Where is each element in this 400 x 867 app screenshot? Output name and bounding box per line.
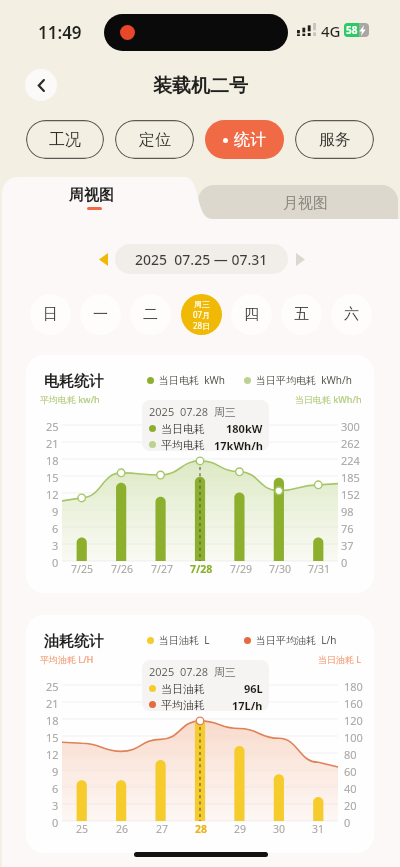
button[interactable]: Back <box>25 69 57 101</box>
button[interactable]: Next week <box>289 248 311 270</box>
staticText: 224 <box>341 453 360 468</box>
staticText: 7/30 <box>269 562 291 576</box>
staticText: 15 <box>46 730 59 745</box>
staticText: 17kWh/h <box>214 438 263 451</box>
staticText: 6 <box>52 781 59 796</box>
staticText: 服务 <box>319 130 351 150</box>
button[interactable]: 四 <box>231 294 272 335</box>
staticText: 工况 <box>49 130 81 150</box>
staticText: 25 <box>46 679 59 694</box>
staticText: 60 <box>344 764 357 779</box>
staticText: 7/25 <box>71 562 93 576</box>
staticText: 当日电耗 <box>161 422 205 436</box>
staticText: 40 <box>344 781 357 796</box>
staticText: 统计 <box>234 130 266 150</box>
staticText: 30 <box>273 822 286 836</box>
staticText: 0 <box>52 815 59 830</box>
staticText: 25 <box>76 822 89 836</box>
staticText: 装载机二号 <box>153 74 248 98</box>
staticText: 9 <box>52 504 59 519</box>
staticText: 160 <box>344 696 363 711</box>
staticText: 37 <box>341 538 354 553</box>
staticText: 180 <box>344 679 363 694</box>
staticText: 7/27 <box>151 562 173 576</box>
staticText: 98 <box>341 504 354 519</box>
staticText: 18 <box>46 713 59 728</box>
staticText: 15 <box>46 470 59 485</box>
staticText: 2025 07.28 周三 <box>149 664 236 679</box>
staticText: 7/29 <box>230 562 252 576</box>
staticText: 2025 07.28 周三 <box>149 404 236 419</box>
staticText: 四 <box>244 305 259 324</box>
staticText: 300 <box>341 419 360 434</box>
staticText: 二 <box>143 305 158 324</box>
staticText: 21 <box>46 696 59 711</box>
staticText: 平均电耗 <box>161 438 205 451</box>
staticText: 26 <box>116 822 129 836</box>
button[interactable]: Previous week <box>92 248 114 270</box>
staticText: 一 <box>93 305 108 324</box>
staticText: 7/31 <box>308 562 330 576</box>
staticText: 31 <box>312 822 325 836</box>
staticText: 80 <box>344 747 357 762</box>
button[interactable]: 一 <box>80 294 121 335</box>
button[interactable]: 周视图 <box>2 177 207 219</box>
staticText: 当日平均电耗 kWh/h <box>256 373 352 387</box>
staticText: 11:49 <box>38 21 82 44</box>
staticText: 周三 <box>194 299 210 309</box>
button[interactable]: 2025 07.25 — 07.31 <box>115 244 288 274</box>
button[interactable]: 六 <box>331 294 372 335</box>
staticText: 4G <box>321 21 341 41</box>
staticText: 2025 07.25 — 07.31 <box>135 250 268 269</box>
staticText: 当日平均油耗 L/h <box>256 633 337 647</box>
staticText: 月视图 <box>283 194 328 213</box>
staticText: 五 <box>294 305 309 324</box>
button[interactable]: 服务 <box>295 120 374 159</box>
staticText: 262 <box>341 436 360 451</box>
staticText: 当日电耗 kWh/h <box>295 393 362 405</box>
staticText: 当日油耗 L <box>318 653 362 665</box>
staticText: 100 <box>344 730 363 745</box>
staticText: 六 <box>344 305 359 324</box>
staticText: 120 <box>344 713 363 728</box>
staticText: 7/28 <box>190 562 213 576</box>
button[interactable]: 统计 <box>205 120 284 159</box>
staticText: 电耗统计 <box>44 372 104 391</box>
staticText: 58 <box>346 23 358 37</box>
staticText: 28 <box>195 822 208 836</box>
staticText: 28日 <box>193 320 211 331</box>
staticText: 3 <box>52 798 59 813</box>
staticText: 当日油耗 L <box>159 633 210 647</box>
staticText: 152 <box>341 487 360 502</box>
staticText: 3 <box>52 538 59 553</box>
staticText: 平均油耗 L/H <box>40 653 94 665</box>
staticText: 平均电耗 kw/h <box>40 393 100 405</box>
staticText: 定位 <box>139 130 171 150</box>
button[interactable]: 日 <box>30 294 71 335</box>
staticText: 7/26 <box>111 562 133 576</box>
staticText: 12 <box>46 487 59 502</box>
staticText: 0 <box>344 815 351 830</box>
staticText: 96L <box>244 681 263 696</box>
button[interactable]: 二 <box>130 294 171 335</box>
staticText: 油耗统计 <box>44 632 104 651</box>
staticText: 07月 <box>193 309 211 320</box>
staticText: 17L/h <box>232 698 263 711</box>
staticText: 0 <box>52 555 59 570</box>
staticText: 185 <box>341 470 360 485</box>
staticText: 周视图 <box>69 186 114 205</box>
button[interactable]: 周三 <box>181 294 222 335</box>
staticText: 0 <box>341 555 348 570</box>
button[interactable]: 月视图 <box>198 185 398 225</box>
button[interactable]: 五 <box>281 294 322 335</box>
button[interactable]: 工况 <box>26 120 104 159</box>
staticText: 9 <box>52 764 59 779</box>
staticText: 日 <box>43 305 58 324</box>
staticText: 180kW <box>226 421 263 436</box>
button[interactable]: 定位 <box>115 120 194 159</box>
staticText: 20 <box>344 798 357 813</box>
staticText: 当日电耗 kWh <box>159 373 226 387</box>
staticText: 27 <box>156 822 169 836</box>
staticText: 25 <box>46 419 59 434</box>
staticText: 76 <box>341 521 354 536</box>
